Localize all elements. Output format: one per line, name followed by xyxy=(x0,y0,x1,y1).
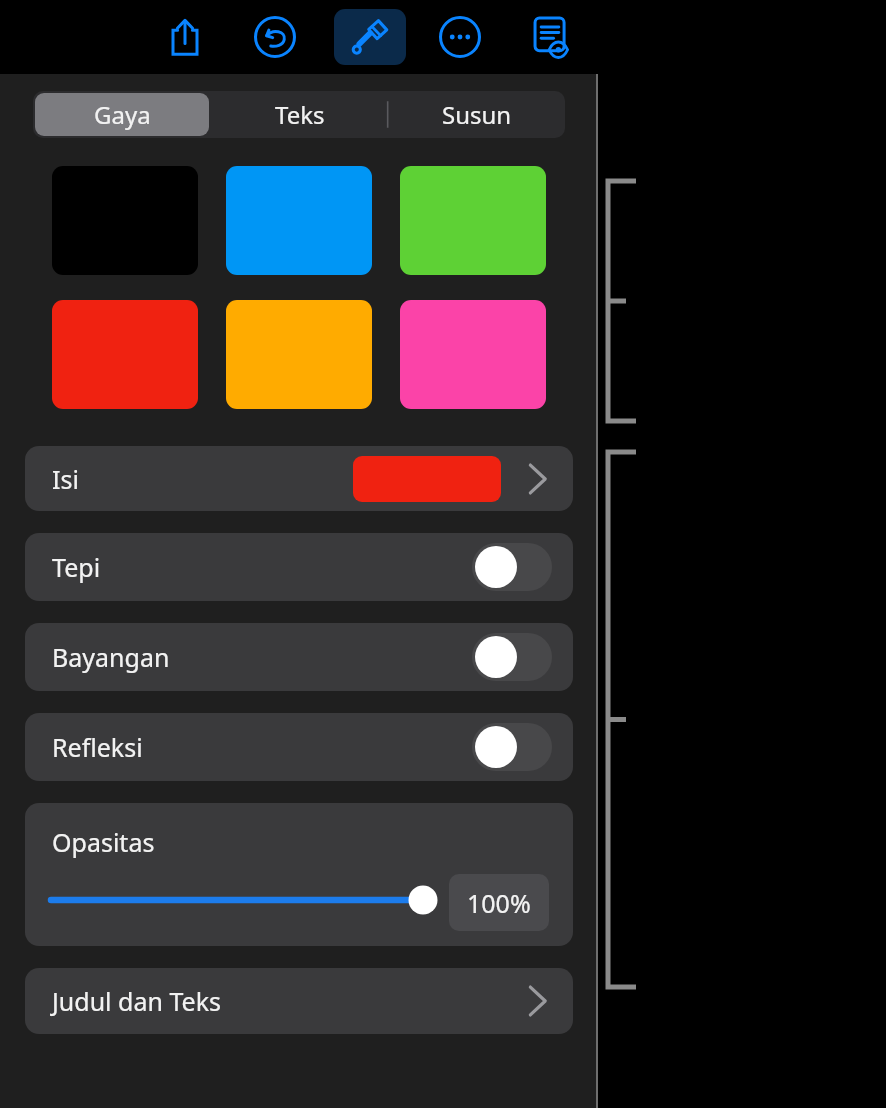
button[interactable]: Style swatch xyxy=(226,300,372,409)
button[interactable]: More xyxy=(429,6,491,68)
button[interactable]: Refleksi xyxy=(25,713,573,781)
button[interactable]: Undo xyxy=(244,6,306,68)
button[interactable]: Bayangan xyxy=(25,623,573,691)
button[interactable]: Style swatch xyxy=(400,300,546,409)
button[interactable]: Refleksi xyxy=(472,723,552,771)
staticText: Opasitas xyxy=(52,825,155,859)
button[interactable]: Susun xyxy=(388,91,565,138)
staticText: Gaya xyxy=(94,98,151,131)
button[interactable]: Judul dan Teks xyxy=(25,968,573,1034)
staticText: Refleksi xyxy=(52,730,143,764)
button[interactable] xyxy=(51,880,437,920)
button[interactable]: Tepi xyxy=(25,533,573,601)
staticText: Judul dan Teks xyxy=(52,984,221,1018)
staticText: Teks xyxy=(275,98,325,131)
staticText: Susun xyxy=(442,98,512,131)
button[interactable]: Style swatch xyxy=(52,300,198,409)
button[interactable]: Gaya xyxy=(35,93,209,136)
button[interactable]: Isi xyxy=(25,446,573,511)
button[interactable]: Style swatch xyxy=(226,166,372,275)
button[interactable]: Document options xyxy=(519,6,581,68)
staticText: Isi xyxy=(52,462,79,496)
staticText: Tepi xyxy=(52,550,101,584)
staticText: Bayangan xyxy=(52,640,170,674)
button[interactable]: Tepi xyxy=(472,543,552,591)
button[interactable]: 100% xyxy=(449,874,549,931)
button[interactable]: Format xyxy=(334,9,406,65)
button[interactable]: Style swatch xyxy=(400,166,546,275)
button[interactable]: Bayangan xyxy=(472,633,552,681)
button[interactable]: Teks xyxy=(211,91,388,138)
staticText: 100% xyxy=(467,886,531,920)
button[interactable]: Share xyxy=(154,6,216,68)
